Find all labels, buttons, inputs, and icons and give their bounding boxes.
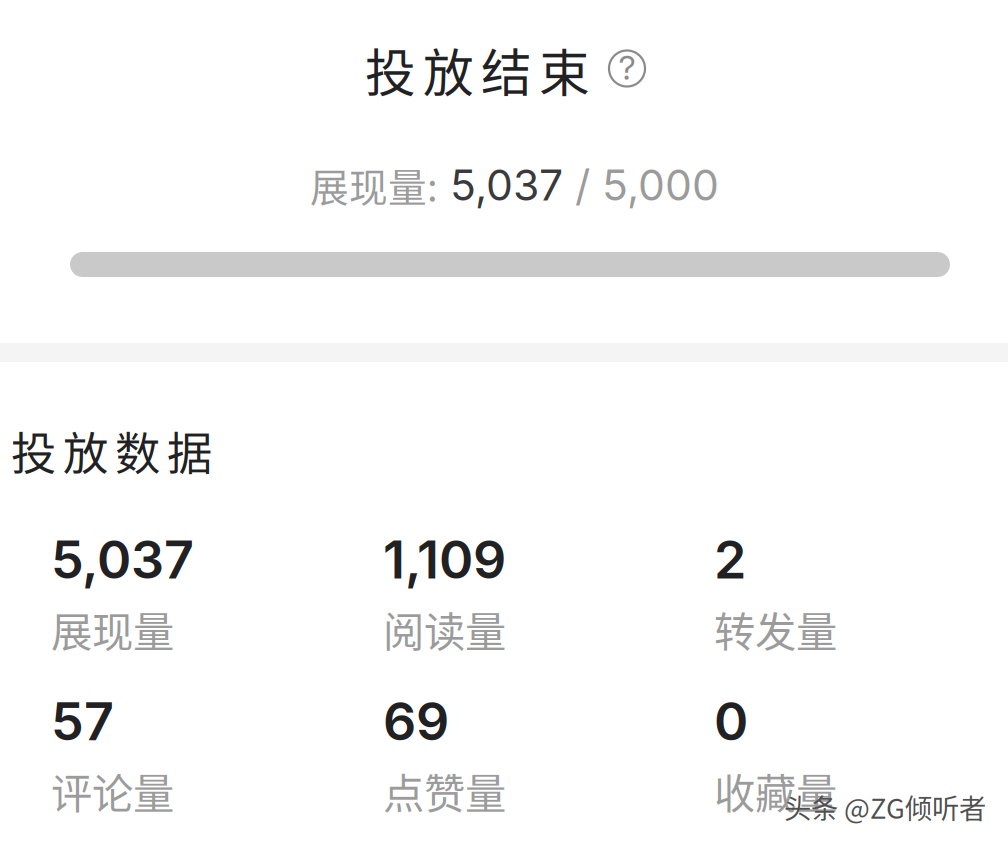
staticText: 展现量: [310, 157, 438, 213]
staticText: 点赞量 [383, 761, 506, 821]
staticText: 5,037 [51, 528, 194, 591]
staticText: 0 [714, 690, 748, 753]
staticText: 69 [383, 690, 449, 753]
staticText: 评论量 [51, 761, 174, 821]
staticText: 5,000 [602, 159, 719, 211]
button[interactable]: 帮助 [601, 42, 653, 94]
staticText: 展现量 [51, 599, 174, 659]
staticText: 投放数据 [11, 418, 212, 484]
staticText: 1,109 [383, 528, 506, 591]
staticText: 转发量 [714, 599, 837, 659]
staticText: 投放结束 [365, 33, 590, 106]
staticText: 2 [714, 528, 746, 591]
staticText: 5,037 [438, 159, 563, 211]
staticText: ? [618, 47, 635, 88]
staticText: 收藏量 [714, 761, 837, 821]
staticText: / [563, 159, 602, 211]
staticText: 57 [51, 690, 114, 753]
staticText: 阅读量 [383, 599, 506, 659]
staticText: 头条 @ZG倾听者 [784, 787, 986, 827]
